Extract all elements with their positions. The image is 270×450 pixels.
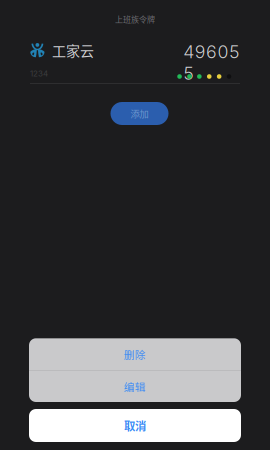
staticText: 1234 [30, 69, 48, 78]
staticText: 取消 [124, 417, 146, 434]
staticText: 添加 [130, 107, 148, 120]
staticText: 编辑 [124, 379, 146, 394]
staticText: 删除 [124, 347, 146, 362]
staticText: 工家云 [52, 40, 94, 60]
staticText: 上班族令牌 [115, 13, 155, 25]
button[interactable]: 编辑 [29, 371, 241, 402]
staticText: 496055 [183, 41, 240, 84]
button[interactable]: 添加 [110, 102, 168, 125]
button[interactable]: 删除 [29, 338, 241, 370]
button[interactable]: 取消 [29, 409, 241, 442]
